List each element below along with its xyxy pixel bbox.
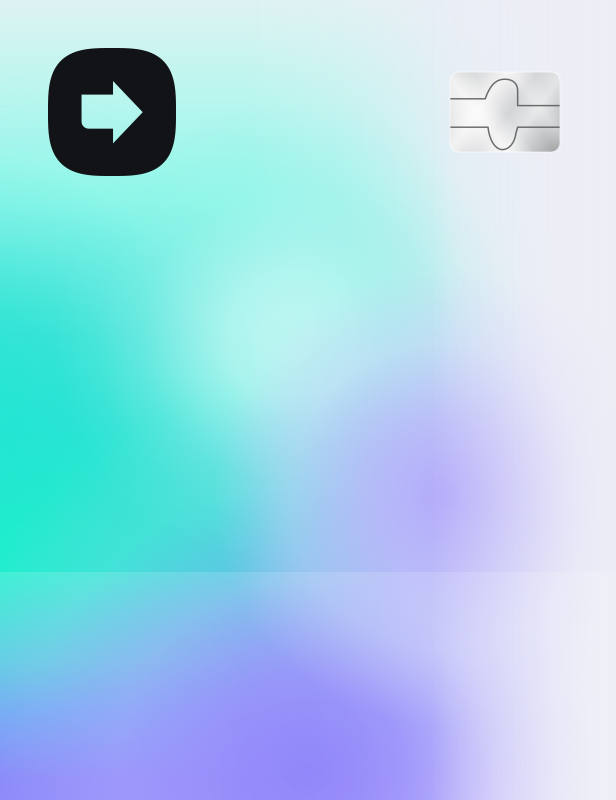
button[interactable]: Send (48, 48, 176, 176)
